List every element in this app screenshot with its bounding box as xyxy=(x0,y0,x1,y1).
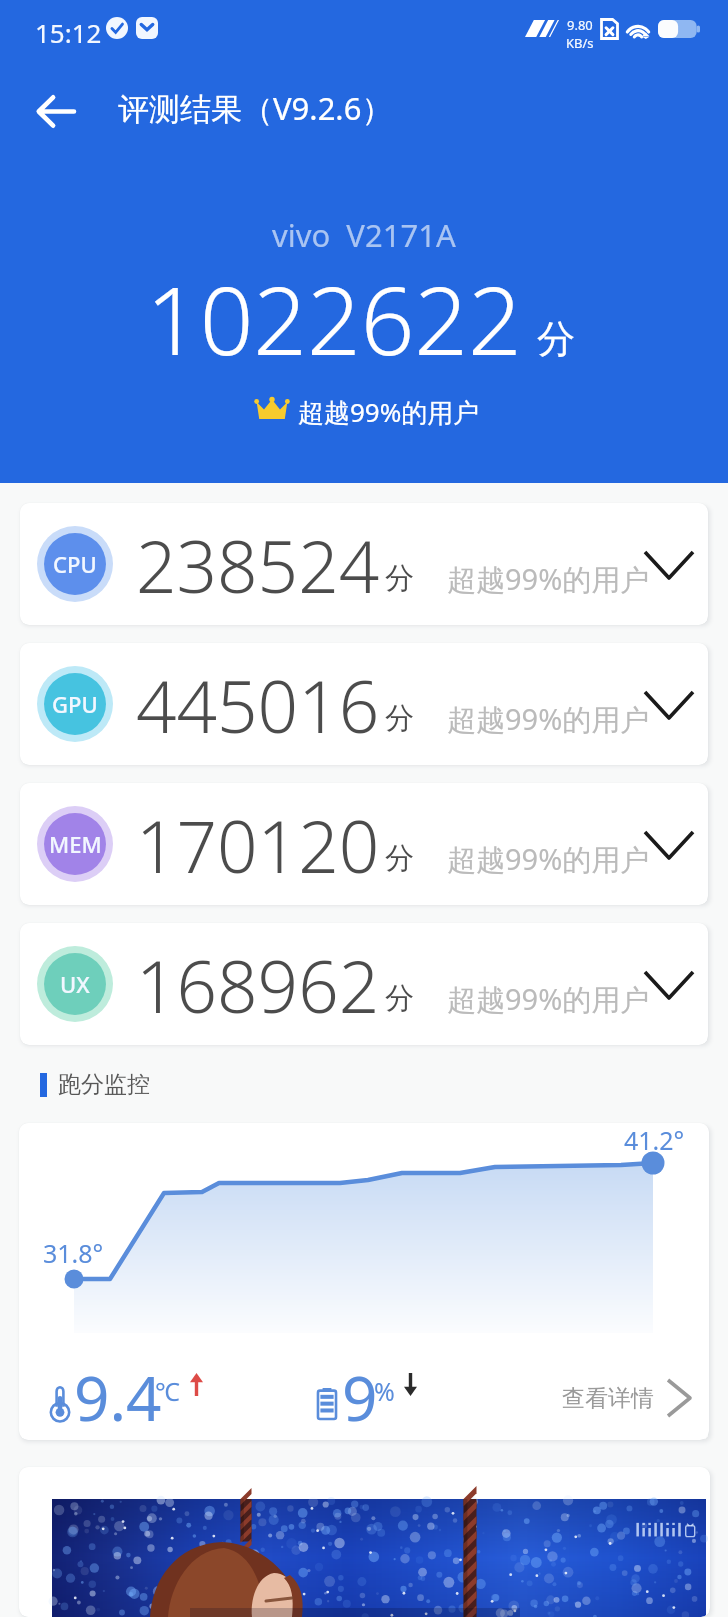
staticText: MEM xyxy=(49,829,102,859)
staticText: ℃ xyxy=(155,1374,180,1408)
staticText: 查看详情 xyxy=(562,1384,654,1413)
staticText: KB/s xyxy=(566,34,594,52)
staticText: CPU xyxy=(53,549,97,579)
staticText: 9.80 xyxy=(567,16,593,34)
staticText: 168962 xyxy=(136,937,380,1034)
button[interactable]: 查看详情 xyxy=(562,1366,692,1430)
staticText: 评测结果（V9.2.6） xyxy=(118,87,393,129)
staticText: 31.8° xyxy=(43,1236,104,1270)
button[interactable] xyxy=(19,1467,710,1617)
staticText: 分 xyxy=(385,700,414,737)
staticText: 超越99%的用户 xyxy=(447,979,650,1019)
staticText: 分 xyxy=(385,980,414,1017)
staticText: 9.4 xyxy=(74,1355,162,1439)
staticText: 跑分监控 xyxy=(58,1070,150,1099)
staticText: 超越99%的用户 xyxy=(447,839,650,879)
staticText: 170120 xyxy=(136,797,380,894)
staticText: 41.2° xyxy=(624,1123,685,1157)
staticText: 超越99%的用户 xyxy=(447,699,650,739)
staticText: 分 xyxy=(385,560,414,597)
staticText: 15:12 xyxy=(35,15,102,50)
staticText: % xyxy=(374,1374,395,1408)
staticText: 超越99%的用户 xyxy=(447,559,650,599)
staticText: 445016 xyxy=(136,657,380,754)
staticText: 超越99%的用户 xyxy=(298,394,480,430)
button[interactable]: MEM xyxy=(20,783,708,905)
staticText: 1022622 xyxy=(146,255,522,383)
button[interactable]: Back xyxy=(21,76,91,146)
button[interactable]: UX xyxy=(20,923,708,1045)
button[interactable]: GPU xyxy=(20,643,708,765)
staticText: 分 xyxy=(385,840,414,877)
staticText: UX xyxy=(60,969,90,999)
staticText: vivo V2171A xyxy=(272,214,456,256)
staticText: GPU xyxy=(52,689,98,719)
staticText: 分 xyxy=(537,315,575,363)
button[interactable]: CPU xyxy=(20,503,708,625)
staticText: 238524 xyxy=(136,517,380,614)
staticText: 9 xyxy=(342,1355,378,1439)
